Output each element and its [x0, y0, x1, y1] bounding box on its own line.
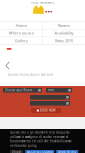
staticText: ACCETTO I COOKIE — [27, 150, 52, 153]
staticText: HOTEL MIRAMARE — [31, 1, 54, 4]
button[interactable]: Home — [0, 22, 42, 29]
button[interactable]: BOOK NOW — [31, 108, 61, 113]
button[interactable]: Where we are — [0, 29, 42, 37]
button[interactable]: Gallery — [0, 37, 42, 44]
button[interactable]: Leggi di piu — [56, 150, 78, 153]
staticText: Double Room, Queen Size bed — [8, 73, 53, 76]
staticText: Rates 2015 — [55, 38, 73, 43]
button[interactable]: Availability — [43, 29, 85, 37]
button[interactable]: Rates 2015 — [43, 37, 85, 44]
button[interactable]: Previous slide — [3, 59, 12, 72]
staticText: Availability — [54, 30, 73, 36]
staticText: Where we are — [9, 30, 34, 36]
button[interactable]: Rooms — [43, 22, 85, 29]
button[interactable]: Select date — [30, 95, 70, 100]
staticText: Rooms — [58, 23, 70, 28]
staticText: nella cookie policy. — [10, 144, 37, 147]
staticText: Questo sito o gli strumenti terzi da que… — [10, 131, 70, 134]
staticText: Gallery — [15, 38, 28, 43]
button[interactable]: ACCETTO I COOKIE — [25, 150, 54, 153]
staticText: From — [48, 88, 54, 92]
staticText: funzionamento ed utili alle finalita ill… — [10, 139, 72, 143]
button[interactable]: Choose your Room — [3, 88, 42, 93]
staticText: Choose your Room — [5, 88, 32, 92]
button[interactable]: From — [46, 88, 72, 93]
staticText: Leggi di piu — [58, 150, 76, 153]
staticText: BOOK NOW — [40, 109, 55, 112]
staticText: utilizzati si avvalgono di cookie necess… — [10, 135, 68, 139]
staticText: Home — [16, 23, 27, 28]
staticText: Chiudi — [12, 150, 22, 153]
button[interactable]: Select date — [30, 101, 70, 106]
button[interactable]: Chiudi — [10, 150, 23, 153]
